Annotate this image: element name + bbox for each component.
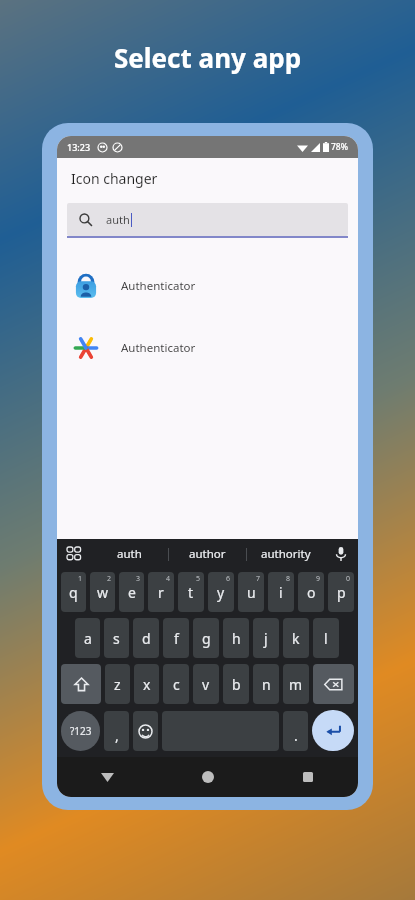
- staticText: c: [173, 675, 180, 694]
- staticText: authority: [261, 546, 311, 562]
- staticText: author: [189, 546, 226, 562]
- staticText: j: [264, 629, 268, 648]
- staticText: e: [128, 583, 136, 602]
- staticText: 78%: [331, 141, 348, 153]
- staticText: .: [294, 726, 298, 745]
- staticText: k: [292, 629, 300, 648]
- button[interactable]: c: [163, 664, 189, 704]
- button[interactable]: .: [283, 711, 308, 751]
- staticText: i: [279, 583, 283, 602]
- button[interactable]: z: [105, 664, 130, 704]
- button[interactable]: x: [134, 664, 159, 704]
- staticText: u: [247, 583, 256, 602]
- staticText: p: [337, 583, 346, 602]
- button[interactable]: authority: [247, 539, 324, 569]
- staticText: n: [262, 675, 271, 694]
- button[interactable]: Authenticator: [57, 317, 358, 379]
- staticText: 8: [286, 574, 291, 584]
- staticText: b: [232, 675, 241, 694]
- staticText: 7: [256, 574, 261, 584]
- staticText: 0: [346, 574, 351, 584]
- staticText: r: [158, 583, 164, 602]
- staticText: 5: [196, 574, 201, 584]
- button[interactable]: y: [208, 572, 234, 612]
- button[interactable]: f: [163, 618, 189, 658]
- button[interactable]: Keyboard switch: [57, 539, 91, 569]
- staticText: v: [202, 675, 210, 694]
- button[interactable]: r: [148, 572, 174, 612]
- staticText: Select any app: [114, 40, 302, 75]
- staticText: q: [69, 583, 78, 602]
- button[interactable]: Enter: [312, 710, 354, 751]
- button[interactable]: Emoji: [133, 711, 158, 751]
- staticText: h: [232, 629, 241, 648]
- button[interactable]: l: [313, 618, 339, 658]
- button[interactable]: auth: [91, 539, 168, 569]
- staticText: t: [188, 583, 194, 602]
- button[interactable]: o: [298, 572, 324, 612]
- button[interactable]: b: [223, 664, 249, 704]
- button[interactable]: Back: [57, 757, 158, 797]
- button[interactable]: g: [193, 618, 219, 658]
- staticText: z: [114, 675, 121, 694]
- button[interactable]: author: [169, 539, 246, 569]
- staticText: 13:23: [67, 141, 91, 153]
- staticText: ?123: [70, 724, 92, 738]
- staticText: o: [307, 583, 316, 602]
- button[interactable]: Home: [158, 757, 258, 797]
- staticText: g: [202, 629, 211, 648]
- button[interactable]: j: [253, 618, 279, 658]
- button[interactable]: Shift: [61, 664, 101, 704]
- staticText: x: [143, 675, 151, 694]
- button[interactable]: k: [283, 618, 309, 658]
- button[interactable]: n: [253, 664, 279, 704]
- button[interactable]: t: [178, 572, 204, 612]
- button[interactable]: s: [104, 618, 129, 658]
- staticText: auth: [106, 212, 130, 227]
- button[interactable]: u: [238, 572, 264, 612]
- button[interactable]: Authenticator: [57, 255, 358, 317]
- button[interactable]: w: [90, 572, 115, 612]
- staticText: 2: [107, 574, 112, 584]
- staticText: f: [174, 629, 179, 648]
- button[interactable]: e: [119, 572, 144, 612]
- button[interactable]: d: [133, 618, 159, 658]
- button[interactable]: p: [328, 572, 354, 612]
- staticText: d: [142, 629, 151, 648]
- staticText: 9: [316, 574, 321, 584]
- button[interactable]: v: [193, 664, 219, 704]
- staticText: auth: [117, 546, 142, 562]
- staticText: l: [324, 629, 328, 648]
- button[interactable]: ,: [104, 711, 129, 751]
- staticText: Authenticator: [121, 278, 196, 294]
- staticText: a: [84, 629, 92, 648]
- staticText: y: [217, 583, 225, 602]
- staticText: Icon changer: [71, 169, 158, 188]
- staticText: m: [289, 675, 303, 694]
- staticText: 3: [136, 574, 141, 584]
- button[interactable]: i: [268, 572, 294, 612]
- staticText: w: [97, 583, 109, 602]
- staticText: 6: [226, 574, 231, 584]
- button[interactable]: Voice input: [324, 539, 358, 569]
- staticText: s: [113, 629, 120, 648]
- button[interactable]: h: [223, 618, 249, 658]
- button[interactable]: ?123: [61, 711, 100, 751]
- staticText: Authenticator: [121, 340, 196, 356]
- button[interactable]: m: [283, 664, 309, 704]
- button[interactable]: Recents: [258, 757, 358, 797]
- button[interactable]: Backspace: [313, 664, 354, 704]
- button[interactable]: q: [61, 572, 86, 612]
- staticText: ,: [115, 726, 119, 745]
- button[interactable]: auth: [67, 203, 348, 236]
- button[interactable]: a: [75, 618, 100, 658]
- staticText: 1: [78, 574, 83, 584]
- staticText: 4: [166, 574, 171, 584]
